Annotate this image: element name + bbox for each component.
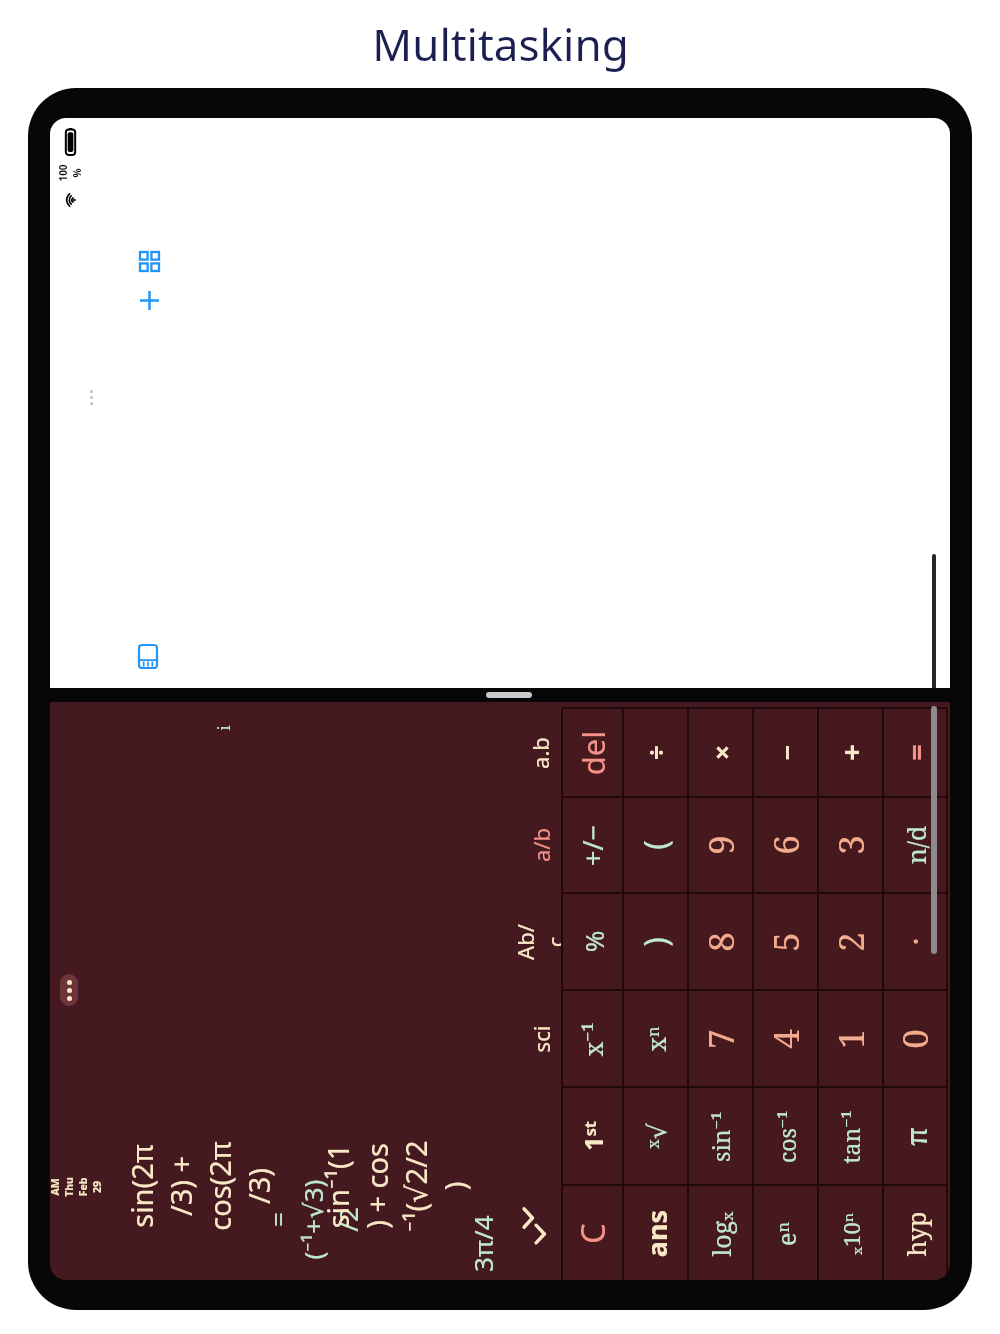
button[interactable]: = [883, 708, 947, 797]
staticText: 3:14 AM Thu Feb 29 [50, 1174, 104, 1200]
staticText: ans [637, 1209, 674, 1257]
staticText: ) [634, 937, 678, 947]
staticText: = (⁻¹+√3)/2 [259, 1179, 364, 1259]
button[interactable]: sci [518, 990, 562, 1087]
staticText: Multitasking [372, 14, 629, 74]
button[interactable]: Add [135, 286, 163, 314]
staticText: − [767, 744, 804, 760]
staticText: 6 [762, 835, 810, 855]
staticText: ₓ10ⁿ [835, 1212, 865, 1255]
button[interactable]: More modes [518, 1185, 562, 1280]
staticText: x⁻¹ [575, 1021, 609, 1056]
button[interactable]: 5 [753, 893, 818, 990]
staticText: n/d [898, 825, 932, 864]
button[interactable]: Resize split [486, 692, 532, 698]
staticText: xⁿ [638, 1026, 672, 1051]
staticText: 1 [827, 1029, 875, 1049]
staticText: sin⁻¹(1) + cos⁻¹(√2/2) [318, 1140, 474, 1232]
staticText: a.b [525, 737, 555, 769]
staticText: + [831, 744, 870, 761]
button[interactable]: C [562, 1185, 623, 1280]
button[interactable]: xⁿ [623, 990, 688, 1087]
button[interactable]: 7 [688, 990, 753, 1087]
button[interactable]: a/b [518, 797, 562, 893]
button[interactable]: % [562, 893, 623, 990]
staticText: 7 [697, 1029, 745, 1049]
button[interactable]: 0 [883, 990, 947, 1087]
button[interactable]: App grid [136, 248, 162, 274]
button[interactable]: sin⁻¹ [688, 1087, 753, 1185]
staticText: π [896, 1127, 935, 1146]
button[interactable]: tan⁻¹ [818, 1087, 883, 1185]
button[interactable]: π [883, 1087, 947, 1185]
staticText: · [894, 937, 935, 945]
staticText: = 3π/4 [465, 1215, 500, 1280]
staticText: +/− [574, 825, 611, 866]
button[interactable]: 3 [818, 797, 883, 893]
button[interactable]: 1ˢᵗ [562, 1087, 623, 1185]
button[interactable]: Ab/c [518, 893, 562, 990]
button[interactable]: hyp [883, 1185, 947, 1280]
staticText: ˣ√ [639, 1123, 673, 1149]
button[interactable]: ˣ√ [623, 1087, 688, 1185]
button[interactable]: 8 [688, 893, 753, 990]
staticText: sin(2π/3) + cos(2π/3) [122, 1140, 278, 1232]
button[interactable]: 1 [818, 990, 883, 1087]
staticText: × [702, 744, 739, 760]
staticText: 100% [56, 161, 84, 185]
button[interactable]: × [688, 708, 753, 797]
button[interactable]: +/− [562, 797, 623, 893]
staticText: 2 [827, 932, 875, 952]
button[interactable]: ÷ [623, 708, 688, 797]
button[interactable]: n/d [883, 797, 947, 893]
button[interactable]: Show history [508, 1198, 548, 1238]
staticText: 1ˢᵗ [576, 1121, 610, 1151]
staticText: C [570, 1223, 615, 1244]
button[interactable]: logₓ [688, 1185, 753, 1280]
button[interactable]: 9 [688, 797, 753, 893]
staticText: 9 [697, 835, 745, 855]
button[interactable]: Keyboard [134, 642, 162, 670]
staticText: del [571, 730, 613, 775]
button[interactable]: del [562, 708, 623, 797]
staticText: sin⁻¹ [705, 1111, 736, 1162]
staticText: 8 [697, 932, 745, 952]
button[interactable]: x⁻¹ [562, 990, 623, 1087]
button[interactable]: eⁿ [753, 1185, 818, 1280]
button[interactable]: ( [623, 797, 688, 893]
staticText: a/b [525, 827, 555, 862]
staticText: sci [525, 1025, 555, 1052]
button[interactable]: cos⁻¹ [753, 1087, 818, 1185]
button[interactable]: 6 [753, 797, 818, 893]
staticText: hyp [898, 1211, 932, 1256]
button[interactable]: − [753, 708, 818, 797]
staticText: 3 [827, 835, 875, 855]
staticText: = [896, 744, 935, 761]
staticText: % [575, 930, 610, 952]
button[interactable]: ₓ10ⁿ [818, 1185, 883, 1280]
staticText: 5 [762, 932, 810, 952]
button[interactable]: Window options [60, 974, 78, 1006]
staticText: tan⁻¹ [835, 1109, 866, 1164]
button[interactable]: + [818, 708, 883, 797]
staticText: logₓ [704, 1211, 738, 1257]
button[interactable]: Info [210, 714, 238, 742]
button[interactable]: · [883, 893, 947, 990]
staticText: ( [634, 840, 678, 850]
button[interactable]: ans [623, 1185, 688, 1280]
staticText: Ab/c [510, 920, 570, 964]
staticText: eⁿ [769, 1222, 803, 1246]
button[interactable]: 4 [753, 990, 818, 1087]
button[interactable]: ) [623, 893, 688, 990]
staticText: ÷ [638, 745, 673, 760]
button[interactable]: a.b [518, 708, 562, 797]
button[interactable]: 2 [818, 893, 883, 990]
staticText: 0 [891, 1029, 939, 1049]
staticText: i [213, 725, 235, 731]
staticText: cos⁻¹ [770, 1109, 801, 1163]
staticText: 4 [762, 1029, 810, 1049]
